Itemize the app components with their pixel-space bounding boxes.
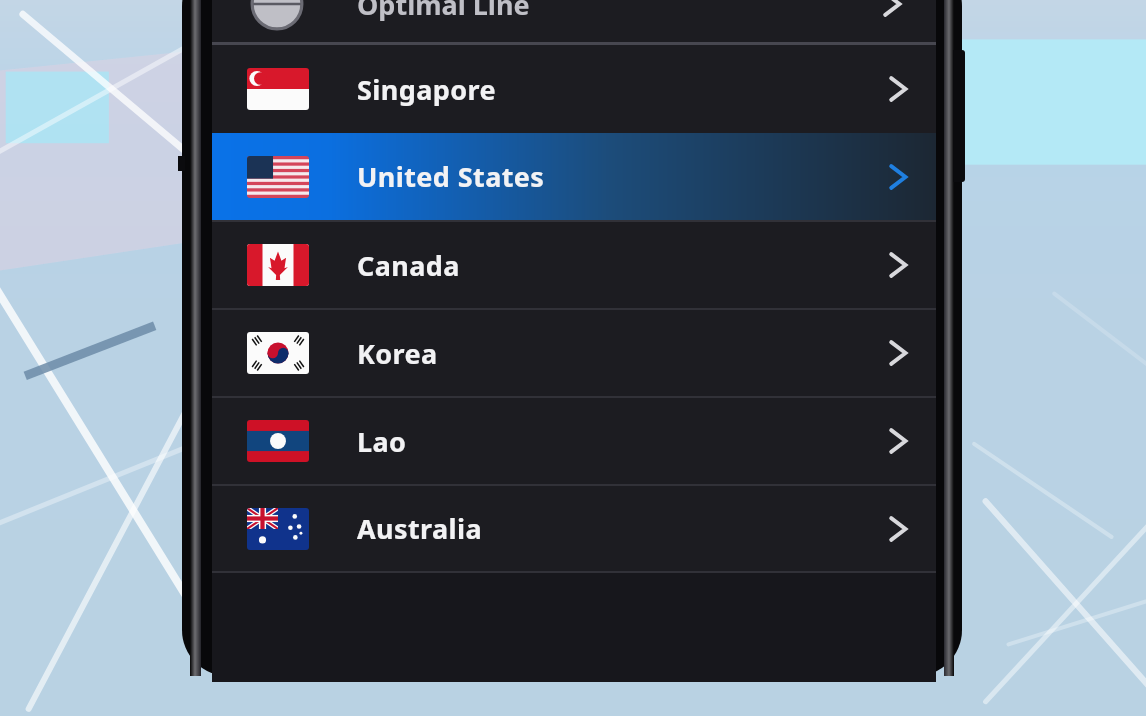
button[interactable]: Open Canada bbox=[875, 242, 921, 288]
button[interactable]: Open Australia bbox=[875, 506, 921, 552]
staticText: Lao bbox=[357, 423, 407, 460]
staticText: United States bbox=[357, 158, 545, 195]
button[interactable]: Open Lao bbox=[875, 418, 921, 464]
button[interactable]: Open United States bbox=[875, 154, 921, 200]
staticText: Optimal Line bbox=[357, 0, 530, 23]
button[interactable]: Power button bbox=[953, 50, 965, 182]
button[interactable]: Singapore bbox=[212, 45, 936, 133]
button[interactable]: Lao bbox=[212, 398, 936, 484]
button[interactable]: Korea bbox=[212, 310, 936, 396]
staticText: Korea bbox=[357, 335, 438, 372]
button[interactable]: Canada bbox=[212, 222, 936, 308]
staticText: Singapore bbox=[357, 71, 496, 108]
staticText: Australia bbox=[357, 510, 483, 547]
button[interactable]: United States bbox=[212, 133, 936, 220]
staticText: Canada bbox=[357, 247, 460, 284]
button[interactable]: Open Korea bbox=[875, 330, 921, 376]
button[interactable]: Australia bbox=[212, 486, 936, 571]
button[interactable]: Optimal Line bbox=[212, 0, 936, 42]
button[interactable]: Open Singapore bbox=[875, 66, 921, 112]
